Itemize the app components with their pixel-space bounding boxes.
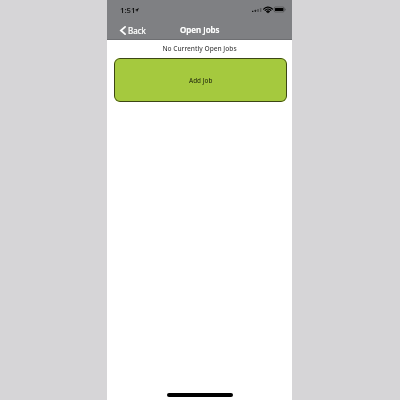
button[interactable]: Back: [120, 25, 146, 36]
button[interactable]: Add Job: [114, 58, 287, 102]
staticText: No Currently Open Jobs: [107, 44, 292, 53]
staticText: Back: [128, 25, 146, 36]
staticText: Add Job: [189, 76, 213, 85]
other: Home indicator: [167, 393, 233, 397]
other: Back: [120, 26, 126, 35]
staticText: Open Jobs: [180, 24, 220, 35]
staticText: 1:51: [120, 5, 136, 16]
